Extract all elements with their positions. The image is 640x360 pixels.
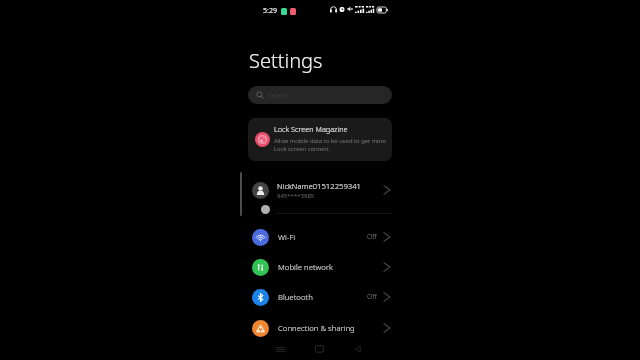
button[interactable]: Mobile network [240, 252, 400, 282]
staticText: Lock Screen Magazine [274, 124, 348, 134]
staticText: 5:29 [263, 6, 277, 16]
staticText: Lock screen content. [274, 145, 331, 153]
staticText: Off [367, 232, 377, 242]
staticText: Bluetooth [278, 292, 367, 303]
staticText: Connection & sharing [278, 323, 383, 334]
button[interactable]: Search [248, 86, 392, 104]
staticText: NickName01512259341 [277, 181, 361, 191]
button[interactable]: Bluetooth [240, 282, 400, 312]
button[interactable]: Recent apps [271, 340, 289, 358]
button[interactable]: Home [310, 340, 328, 358]
button[interactable]: Back [349, 340, 367, 358]
staticText: Search [268, 91, 289, 100]
staticText: Allow mobile data to be used to get more [274, 137, 387, 145]
button[interactable]: Lock Screen Magazine [248, 118, 392, 161]
staticText: Off [367, 292, 377, 302]
staticText: 945****3985 [277, 192, 315, 200]
button[interactable]: Connection & sharing [240, 313, 400, 343]
staticText: Settings [249, 47, 323, 74]
staticText: Wi-Fi [278, 232, 367, 243]
staticText: Mobile network [278, 262, 383, 273]
button[interactable]: Wi-Fi [240, 222, 400, 252]
button[interactable]: NickName01512259341 [240, 175, 400, 205]
